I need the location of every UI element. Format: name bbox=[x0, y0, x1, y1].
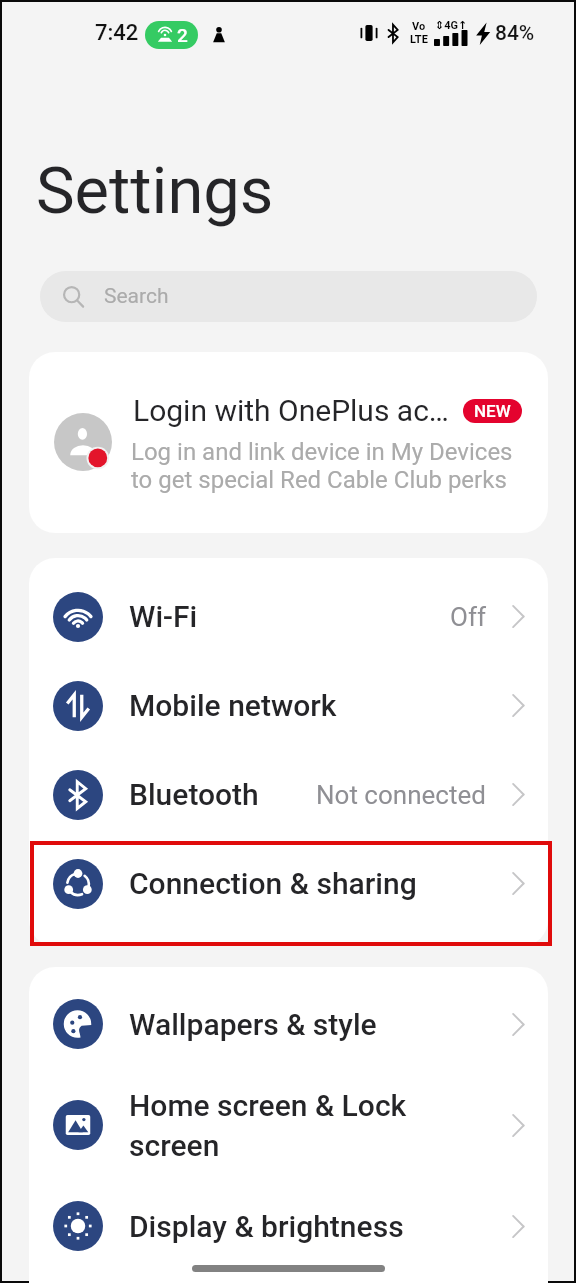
staticText: Display & brightness bbox=[129, 1209, 404, 1244]
staticText: Mobile network bbox=[129, 688, 337, 723]
staticText: Off bbox=[450, 602, 486, 632]
staticText: 84% bbox=[495, 21, 535, 46]
button[interactable]: Search bbox=[40, 271, 537, 322]
button[interactable]: Bluetooth bbox=[29, 750, 548, 839]
button[interactable]: Display & brightness bbox=[29, 1176, 548, 1276]
button[interactable]: Wi-Fi bbox=[29, 572, 548, 661]
staticText: Wallpapers & style bbox=[129, 1007, 377, 1042]
button[interactable]: Wallpapers & style bbox=[29, 974, 548, 1074]
staticText: Home screen & Lock screen bbox=[129, 1088, 407, 1163]
staticText: Log in and link device in My Devices bbox=[131, 438, 513, 466]
staticText: Search bbox=[104, 284, 169, 309]
button[interactable]: Home screen & Lock screen bbox=[29, 1074, 548, 1176]
staticText: Vo bbox=[412, 20, 426, 33]
staticText: Not connected bbox=[316, 780, 486, 810]
button[interactable]: Connection & sharing bbox=[29, 839, 548, 928]
staticText: Bluetooth bbox=[129, 777, 259, 812]
staticText: Login with OnePlus ac… bbox=[133, 393, 449, 428]
staticText: to get special Red Cable Club perks bbox=[131, 466, 507, 494]
staticText: Connection & sharing bbox=[129, 866, 417, 901]
staticText: 7:42 bbox=[95, 20, 139, 46]
staticText: 2 bbox=[177, 24, 188, 46]
button[interactable]: Mobile network bbox=[29, 661, 548, 750]
staticText: Wi-Fi bbox=[129, 599, 198, 634]
staticText: Settings bbox=[36, 153, 274, 229]
button[interactable]: Login with OnePlus ac… bbox=[29, 352, 548, 533]
staticText: ⇕4G↑ bbox=[435, 19, 468, 32]
staticText: LTE bbox=[410, 33, 428, 46]
staticText: NEW bbox=[474, 401, 511, 421]
